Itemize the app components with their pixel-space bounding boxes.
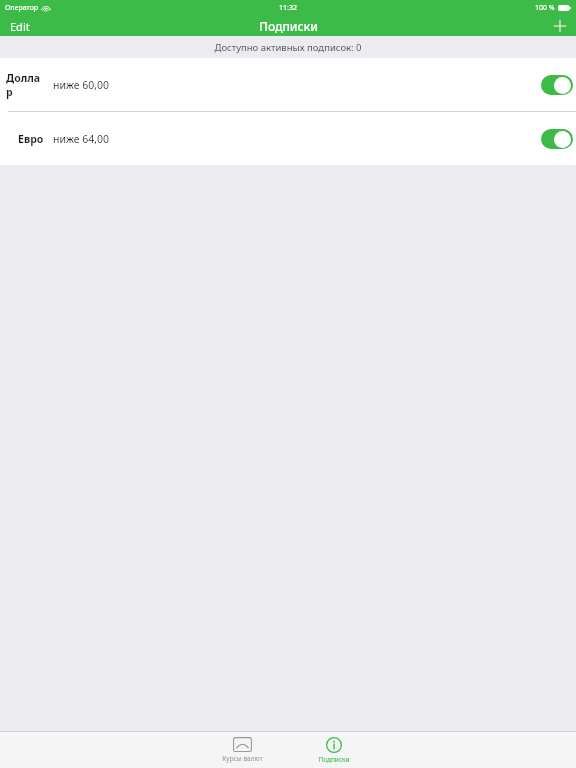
staticText: Доступно активных подписок: 0: [214, 41, 362, 54]
staticText: Курсы валют: [222, 754, 263, 763]
button[interactable]: Курсы валют: [211, 732, 273, 768]
staticText: Подписки: [259, 18, 318, 34]
staticText: Подписки: [318, 755, 350, 764]
button[interactable]: Подписки: [303, 732, 365, 768]
button[interactable]: Toggle subscription: [541, 75, 573, 95]
button[interactable]: Add subscription: [544, 16, 576, 36]
staticText: 100 %: [535, 3, 555, 13]
button[interactable]: Toggle subscription: [541, 129, 573, 149]
staticText: Евро: [18, 132, 44, 146]
staticText: ниже 64,00: [53, 132, 110, 146]
button[interactable]: Edit: [0, 16, 40, 36]
staticText: Доллар: [6, 71, 44, 99]
button[interactable]: Доллар: [0, 58, 576, 111]
staticText: 11:32: [279, 3, 297, 13]
button[interactable]: Евро: [0, 112, 576, 165]
staticText: Edit: [10, 19, 30, 34]
staticText: Оператор: [5, 3, 39, 13]
staticText: ниже 60,00: [53, 78, 110, 92]
